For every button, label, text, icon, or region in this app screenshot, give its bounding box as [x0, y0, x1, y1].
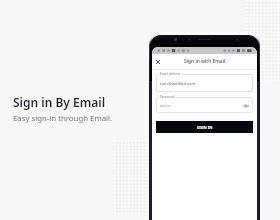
staticText: Sign in By Email	[13, 94, 106, 110]
staticText: Password	[160, 95, 174, 99]
button[interactable]: Close	[153, 57, 163, 67]
staticText: tom@webkul.com	[160, 81, 196, 87]
staticText: Email address	[160, 72, 181, 76]
button[interactable]: Show password	[242, 102, 249, 109]
button[interactable]: SIGN IN	[156, 121, 253, 133]
staticText: Sign in with Email	[184, 58, 226, 65]
staticText: Easy sign-in through Email.	[13, 113, 113, 124]
staticText: SIGN IN	[197, 125, 213, 130]
